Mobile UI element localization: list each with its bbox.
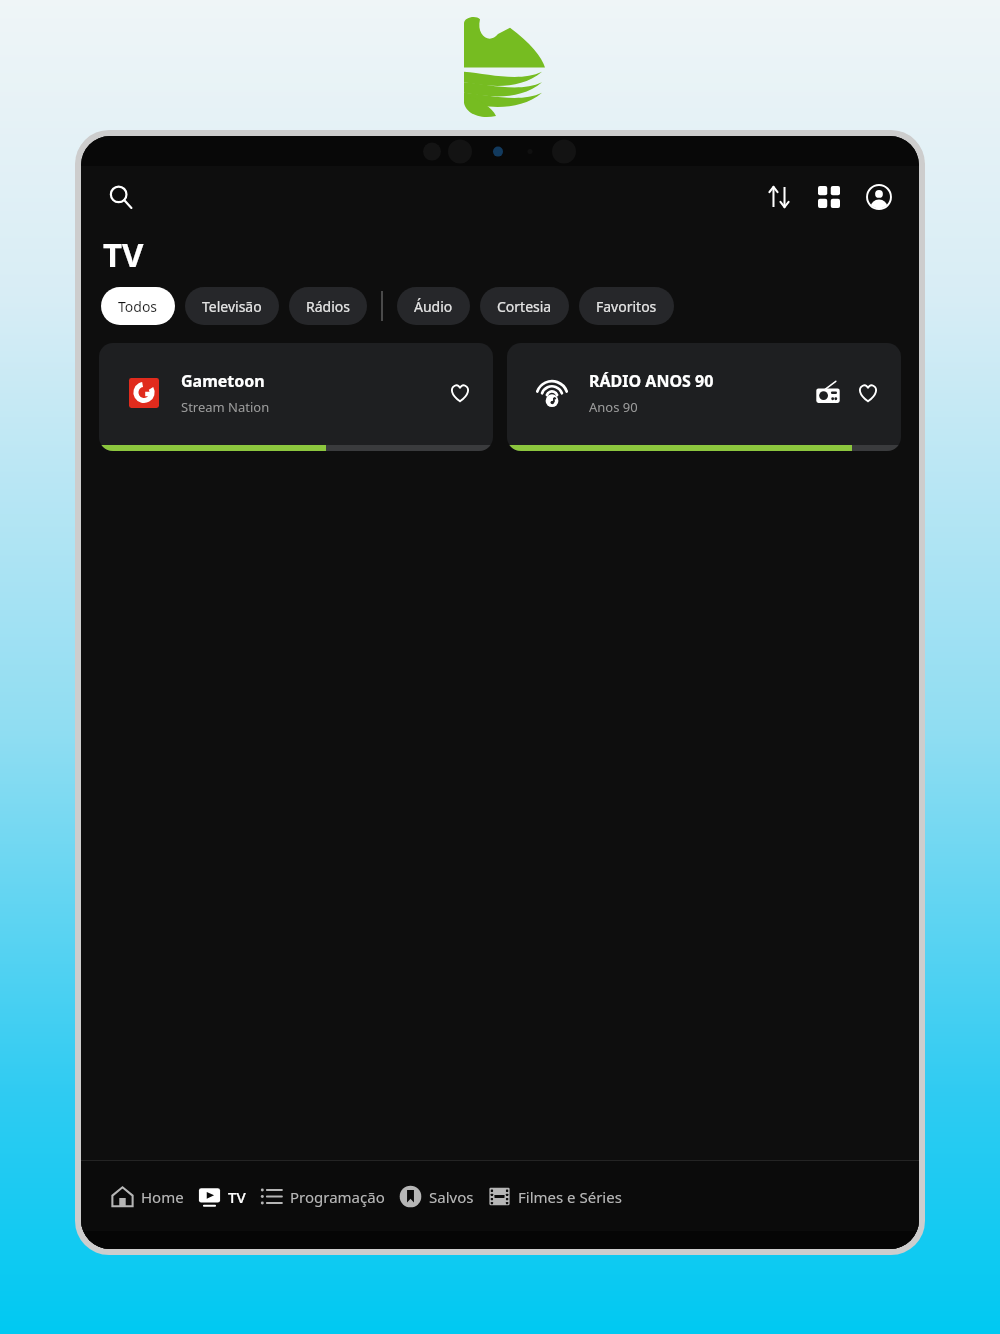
- staticText: Todos: [118, 297, 158, 316]
- button[interactable]: Programação: [260, 1177, 385, 1216]
- button[interactable]: Áudio: [397, 287, 470, 325]
- button[interactable]: TV: [198, 1177, 246, 1216]
- button[interactable]: Search: [99, 175, 143, 219]
- staticText: Áudio: [414, 297, 453, 316]
- button[interactable]: Favoritos: [579, 287, 674, 325]
- button[interactable]: Favorite: [851, 376, 885, 410]
- button[interactable]: Cortesia: [480, 287, 569, 325]
- staticText: RÁDIO ANOS 90: [589, 370, 714, 392]
- button[interactable]: Filmes e Séries: [488, 1177, 622, 1216]
- staticText: Anos 90: [589, 398, 638, 416]
- staticText: Programação: [290, 1187, 385, 1207]
- staticText: Rádios: [306, 297, 350, 316]
- staticText: Televisão: [202, 297, 262, 316]
- staticText: Home: [141, 1187, 184, 1207]
- button[interactable]: Todos: [101, 287, 175, 325]
- staticText: Salvos: [429, 1187, 474, 1207]
- button[interactable]: Rádios: [289, 287, 367, 325]
- staticText: Stream Nation: [181, 398, 270, 416]
- button[interactable]: Account: [857, 175, 901, 219]
- staticText: TV: [228, 1187, 246, 1207]
- button[interactable]: Favorite: [443, 376, 477, 410]
- staticText: Favoritos: [596, 297, 657, 316]
- staticText: TV: [103, 232, 144, 277]
- button[interactable]: Televisão: [185, 287, 279, 325]
- staticText: Gametoon: [181, 370, 265, 392]
- button[interactable]: Sort: [757, 175, 801, 219]
- button[interactable]: RÁDIO ANOS 90: [507, 343, 901, 451]
- button[interactable]: Salvos: [399, 1177, 474, 1216]
- staticText: Filmes e Séries: [518, 1187, 622, 1207]
- staticText: Cortesia: [497, 297, 552, 316]
- button[interactable]: Gametoon: [99, 343, 493, 451]
- button[interactable]: Home: [111, 1177, 184, 1216]
- button[interactable]: Radio: [811, 376, 845, 410]
- button[interactable]: Grid view: [807, 175, 851, 219]
